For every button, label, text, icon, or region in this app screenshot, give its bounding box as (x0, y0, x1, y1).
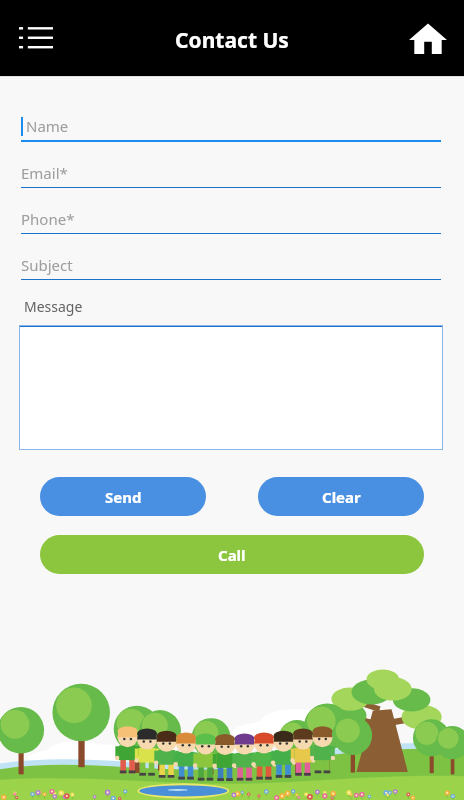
staticText: Contact Us (175, 26, 289, 55)
button[interactable]: Email* (21, 163, 441, 188)
staticText: Phone* (21, 209, 75, 229)
staticText: Clear (322, 487, 361, 507)
button[interactable]: Home (402, 12, 454, 64)
staticText: Email* (21, 163, 68, 183)
button[interactable]: Menu (8, 10, 64, 66)
button[interactable]: Phone* (21, 209, 441, 234)
button[interactable]: Name (21, 116, 441, 142)
staticText: Subject (21, 255, 73, 275)
button[interactable] (19, 325, 443, 450)
staticText: Name (26, 116, 69, 136)
button[interactable]: Call (40, 535, 424, 574)
button[interactable]: Send (40, 477, 206, 516)
button[interactable]: Clear (258, 477, 424, 516)
button[interactable]: Subject (21, 255, 441, 280)
staticText: Call (218, 545, 246, 565)
staticText: Send (105, 487, 142, 507)
staticText: Message (24, 297, 83, 316)
